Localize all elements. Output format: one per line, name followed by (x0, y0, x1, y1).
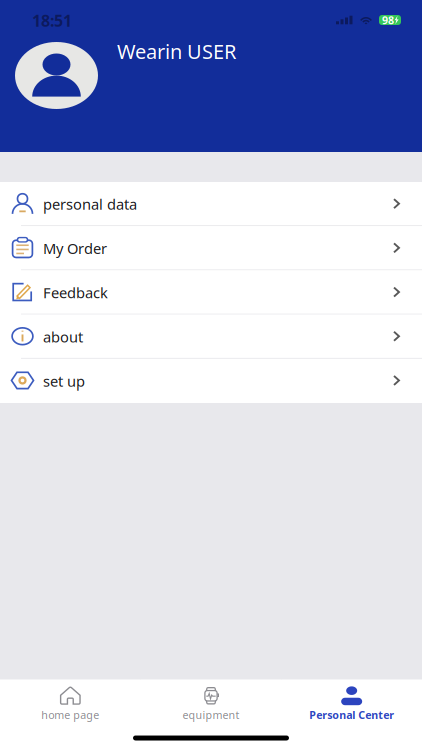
button[interactable]: about (0, 315, 422, 359)
staticText: Wearin USER (117, 38, 236, 65)
button[interactable]: home page (0, 679, 141, 727)
button[interactable]: My Order (0, 226, 422, 270)
staticText: 18:51 (32, 10, 72, 31)
button[interactable]: equipment (141, 679, 281, 727)
staticText: Feedback (43, 283, 108, 302)
staticText: 98 (382, 13, 394, 27)
staticText: home page (41, 708, 99, 722)
staticText: equipment (182, 708, 239, 722)
button[interactable]: Personal Center (281, 679, 422, 727)
button[interactable]: set up (0, 359, 422, 403)
staticText: My Order (43, 239, 107, 258)
staticText: set up (43, 371, 85, 391)
staticText: about (43, 327, 83, 346)
staticText: Personal Center (309, 708, 394, 722)
button[interactable]: personal data (0, 182, 422, 226)
button[interactable]: Feedback (0, 270, 422, 315)
staticText: personal data (43, 194, 137, 214)
